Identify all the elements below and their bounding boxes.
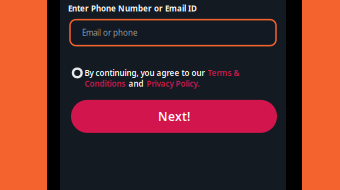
staticText: Terms & <box>208 68 240 78</box>
staticText: Conditions <box>85 78 126 89</box>
button[interactable]: Accept terms and conditions <box>73 69 82 77</box>
staticText: Next! <box>158 108 190 124</box>
button[interactable]: Terms & <box>208 68 240 78</box>
button[interactable]: Conditions <box>85 78 126 89</box>
staticText: Email or phone <box>82 27 138 38</box>
staticText: and <box>129 78 144 89</box>
staticText: By continuing, you agree to our <box>85 68 205 78</box>
staticText: Enter Phone Number or Email ID <box>68 3 197 14</box>
button[interactable]: Email or phone <box>70 20 276 46</box>
button[interactable]: Privacy Policy. <box>147 78 200 89</box>
button[interactable]: Next! <box>71 100 277 133</box>
staticText: Privacy Policy. <box>147 78 200 89</box>
